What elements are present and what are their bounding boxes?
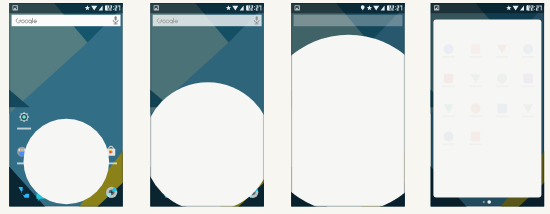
button[interactable]: App drawer opening animation frames xyxy=(0,0,550,214)
